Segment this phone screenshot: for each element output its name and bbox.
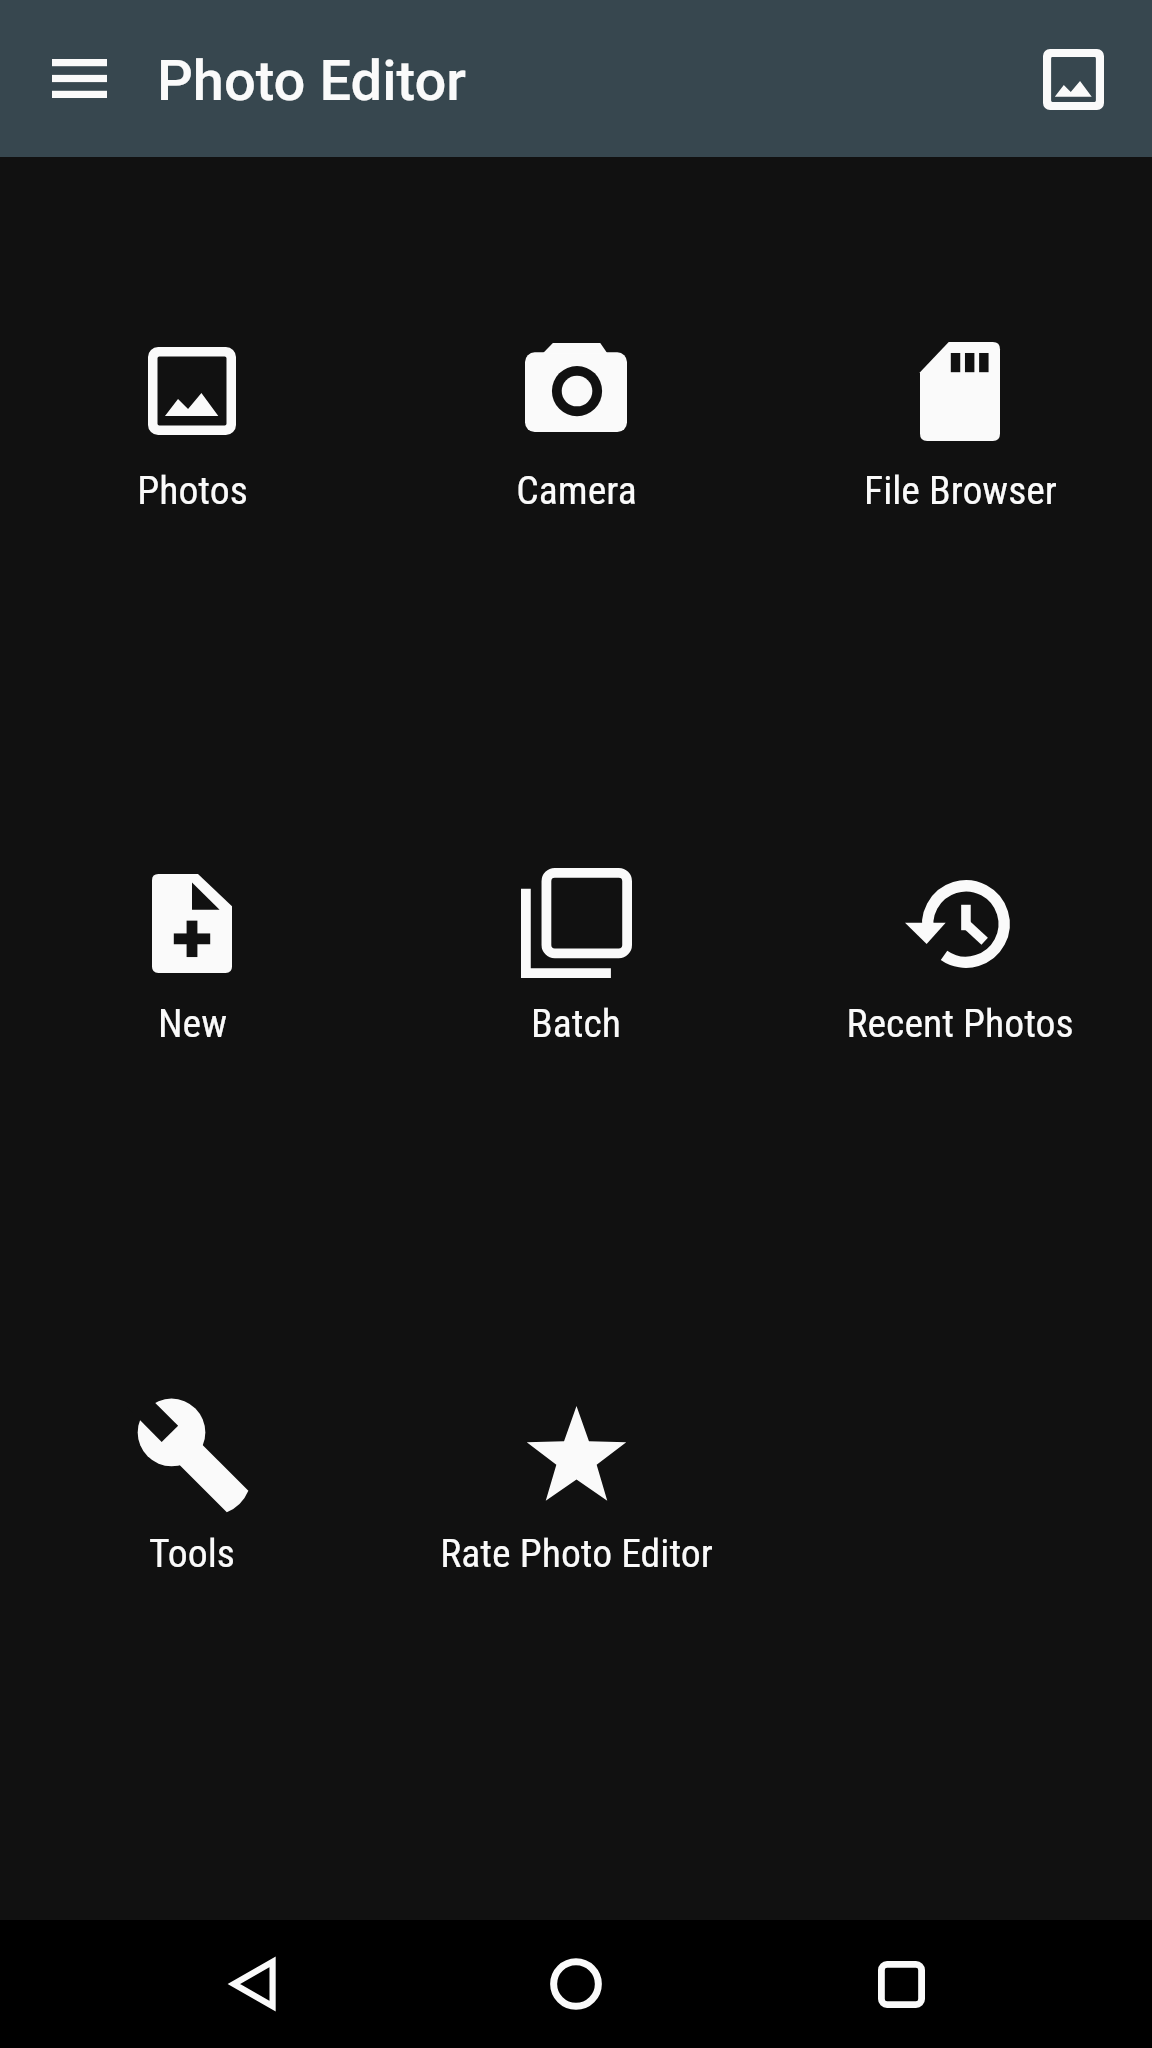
staticText: Photos [137, 467, 248, 514]
button[interactable]: Back [189, 1920, 317, 2048]
button[interactable]: Photos [0, 241, 384, 541]
button[interactable]: Rate Photo Editor [384, 1303, 768, 1603]
button[interactable]: Camera [384, 241, 768, 541]
staticText: Photo Editor [157, 48, 466, 114]
button[interactable]: Recent apps [837, 1920, 965, 2048]
staticText: Camera [516, 467, 637, 514]
button[interactable]: Open navigation drawer [25, 24, 133, 132]
staticText: Tools [149, 1530, 235, 1577]
staticText: New [158, 1000, 227, 1047]
button[interactable]: File Browser [768, 241, 1152, 541]
button[interactable]: Open gallery [1019, 25, 1127, 133]
button[interactable]: Recent Photos [768, 773, 1152, 1073]
button[interactable]: Tools [0, 1303, 384, 1603]
button[interactable]: Home [512, 1920, 640, 2048]
button[interactable]: Batch [384, 773, 768, 1073]
staticText: Rate Photo Editor [440, 1530, 713, 1577]
button[interactable]: New [0, 773, 384, 1073]
staticText: Recent Photos [846, 1000, 1074, 1047]
staticText: File Browser [864, 467, 1057, 514]
staticText: Batch [531, 1000, 621, 1047]
